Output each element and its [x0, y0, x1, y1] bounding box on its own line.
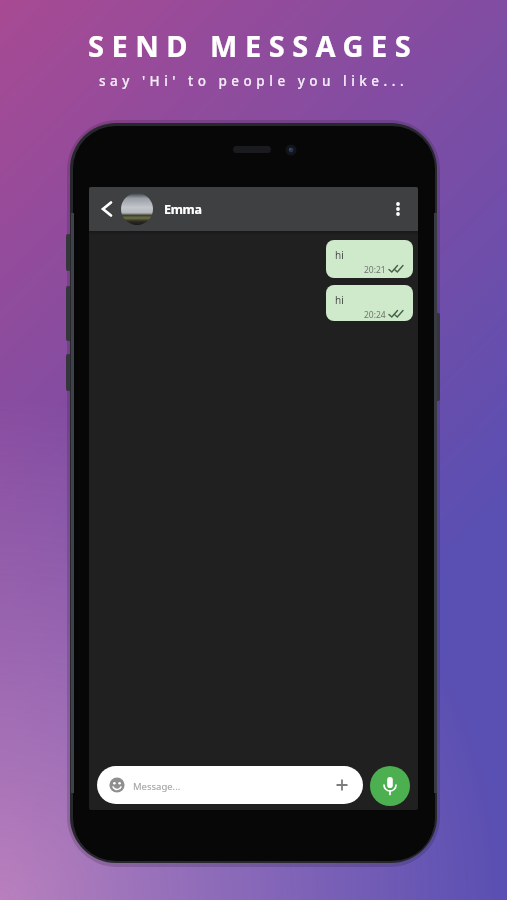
- staticText: Message...: [133, 780, 181, 793]
- button[interactable]: [370, 766, 410, 806]
- staticText: hi: [335, 248, 344, 262]
- staticText: say 'Hi' to people you like...: [99, 72, 409, 90]
- button[interactable]: [98, 200, 116, 218]
- button[interactable]: hi: [326, 285, 413, 321]
- staticText: Emma: [164, 201, 202, 218]
- staticText: 20:24: [364, 309, 386, 321]
- staticText: SEND MESSAGES: [88, 26, 419, 65]
- staticText: hi: [335, 293, 344, 307]
- staticText: 20:21: [364, 264, 386, 276]
- button[interactable]: hi: [326, 240, 413, 278]
- button[interactable]: [390, 201, 406, 217]
- button[interactable]: Emma: [89, 187, 418, 231]
- button[interactable]: Message...: [97, 766, 363, 804]
